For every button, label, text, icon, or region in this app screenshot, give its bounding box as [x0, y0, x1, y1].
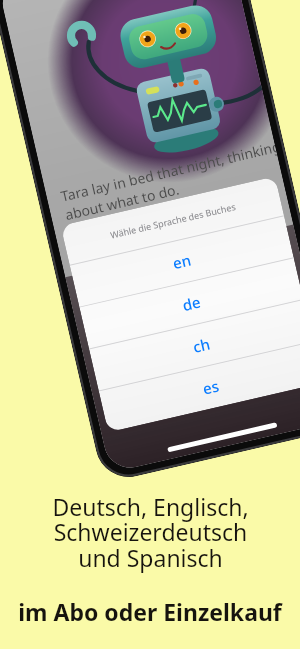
staticText: Tara lay in bed that night, thinking abo…: [59, 138, 282, 224]
staticText: en: [171, 249, 194, 273]
button[interactable]: ch: [89, 300, 300, 390]
button[interactable]: de: [79, 258, 300, 348]
staticText: es: [201, 376, 221, 399]
staticText: im Abo oder Einzelkauf: [18, 596, 282, 627]
button[interactable]: es: [99, 342, 300, 432]
staticText: Wähle die Sprache des Buches: [109, 200, 237, 241]
staticText: ch: [191, 333, 212, 357]
staticText: Deutsch, Englisch, Schweizerdeutsch und …: [52, 491, 249, 574]
button[interactable]: en: [70, 216, 294, 307]
staticText: de: [180, 292, 202, 315]
